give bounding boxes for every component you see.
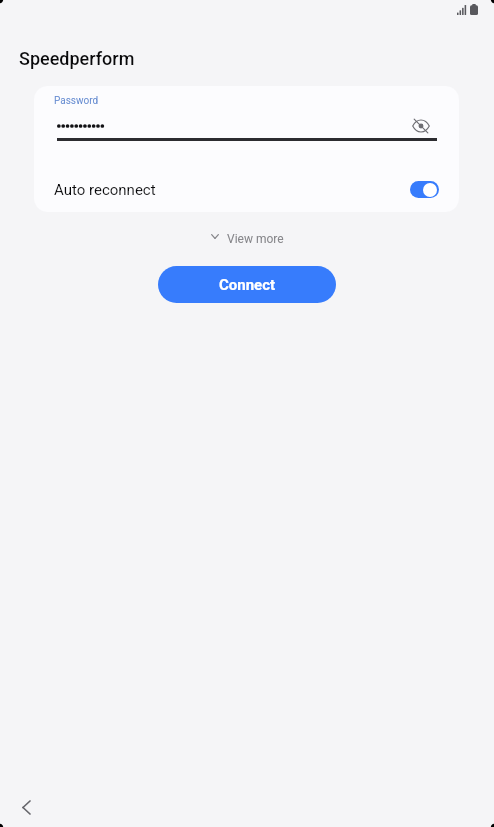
staticText: Connect [219, 276, 276, 294]
button[interactable]: View more [203, 228, 292, 250]
staticText: Speedperform [19, 48, 135, 69]
staticText: View more [227, 232, 284, 246]
button[interactable]: Connect [158, 266, 336, 303]
button[interactable]: Back [13, 794, 39, 820]
button[interactable]: Show password [409, 114, 433, 138]
button[interactable]: Auto reconnect [410, 181, 439, 198]
staticText: Password [54, 95, 99, 107]
staticText: Auto reconnect [54, 181, 156, 199]
button[interactable]: Auto reconnect [34, 174, 459, 206]
